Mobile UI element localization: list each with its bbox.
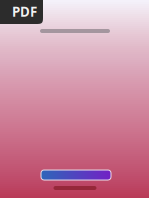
staticText: PDF — [12, 3, 37, 20]
button[interactable]: Open document — [41, 170, 111, 180]
